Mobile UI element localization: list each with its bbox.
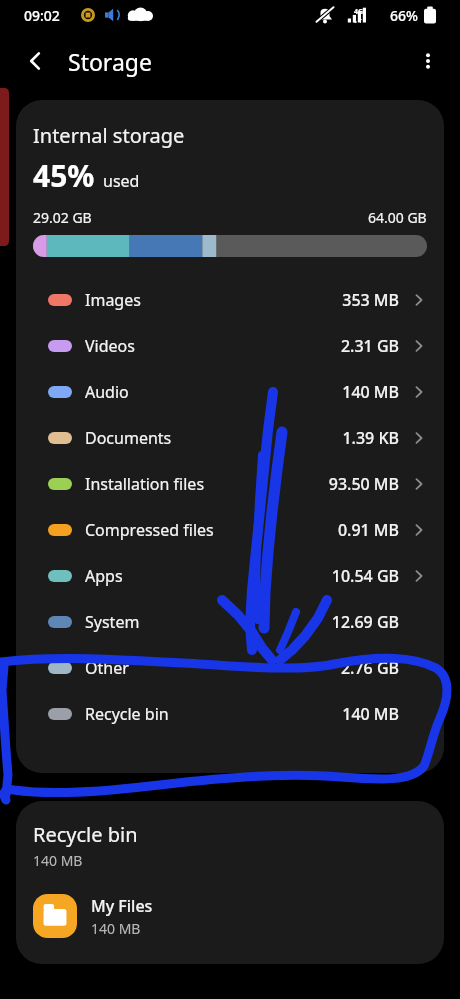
button[interactable]: Back <box>12 37 60 85</box>
staticText: Documents <box>85 427 172 449</box>
staticText: Other <box>85 657 129 679</box>
staticText: ↓↑ <box>353 17 364 24</box>
button[interactable]: My Files <box>16 890 444 942</box>
staticText: Recycle bin <box>85 703 169 725</box>
staticText: System <box>85 611 140 633</box>
staticText: 45% <box>33 155 95 196</box>
staticText: Apps <box>85 565 123 587</box>
staticText: 12.69 GB <box>331 611 399 633</box>
staticText: 1.39 KB <box>342 427 399 449</box>
staticText: 64.00 GB <box>368 208 427 227</box>
staticText: 10.54 GB <box>331 565 399 587</box>
button[interactable]: Audio <box>16 369 444 415</box>
button[interactable]: Documents <box>16 415 444 461</box>
staticText: Installation files <box>85 473 205 495</box>
staticText: 140 MB <box>33 851 83 870</box>
staticText: Compressed files <box>85 519 214 541</box>
staticText: Recycle bin <box>33 821 138 848</box>
button[interactable]: System <box>16 599 444 645</box>
staticText: Audio <box>85 381 129 403</box>
button[interactable]: Apps <box>16 553 444 599</box>
staticText: 93.50 MB <box>328 473 399 495</box>
staticText: 353 MB <box>342 289 399 311</box>
staticText: 29.02 GB <box>33 208 92 227</box>
staticText: 2.31 GB <box>340 335 399 357</box>
staticText: 140 MB <box>91 919 141 938</box>
button[interactable]: Videos <box>16 323 444 369</box>
button[interactable]: Installation files <box>16 461 444 507</box>
staticText: 4G <box>354 7 364 17</box>
staticText: Internal storage <box>33 122 185 149</box>
button[interactable]: Other <box>16 645 444 691</box>
staticText: Videos <box>85 335 135 357</box>
staticText: 140 MB <box>342 703 399 725</box>
button[interactable]: More options <box>404 37 452 85</box>
staticText: 09:02 <box>24 6 60 25</box>
staticText: Storage <box>68 46 152 77</box>
staticText: Images <box>85 289 141 311</box>
button[interactable]: Compressed files <box>16 507 444 553</box>
staticText: used <box>103 170 140 192</box>
staticText: 0.91 MB <box>337 519 399 541</box>
staticText: 140 MB <box>342 381 399 403</box>
button[interactable]: Recycle bin <box>16 691 444 737</box>
button[interactable]: Images <box>16 277 444 323</box>
staticText: 2.76 GB <box>340 657 399 679</box>
staticText: 66% <box>390 6 418 25</box>
staticText: My Files <box>91 895 153 917</box>
